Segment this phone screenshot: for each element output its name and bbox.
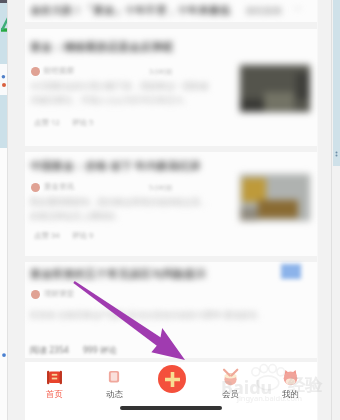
staticText: 5小时前 bbox=[149, 183, 173, 192]
staticText: 财经新闻 bbox=[246, 5, 282, 16]
staticText: 黄金：继续看跌还是会反弹呢 bbox=[30, 40, 173, 54]
staticText: 动态 bbox=[106, 389, 123, 400]
button[interactable]: 首页 bbox=[38, 368, 70, 400]
staticText: 评论 5 bbox=[72, 117, 94, 127]
staticText: 3小时前 bbox=[149, 67, 173, 76]
staticText: 财经观察 bbox=[44, 66, 74, 75]
button[interactable]: 会员 bbox=[214, 368, 246, 400]
staticText: Baidu bbox=[221, 375, 273, 400]
staticText: 中国黄金：价格 创下 年内新高纪录 bbox=[30, 158, 201, 173]
button[interactable]: 黄金：继续看跌还是会反弹呢 bbox=[25, 29, 317, 146]
staticText: 阅读 2354 bbox=[30, 344, 69, 356]
staticText: 关键支撑位，市场人士认为后市仍有压力。 bbox=[30, 95, 192, 106]
staticText: 受多重因素影响，国内黄金零售价格持续走高， bbox=[30, 197, 209, 208]
staticText: 黄金资讯 bbox=[44, 182, 74, 191]
staticText: 评论 9 bbox=[72, 230, 94, 240]
staticText: 首页 bbox=[46, 389, 63, 400]
button[interactable]: Create post bbox=[158, 365, 186, 393]
button[interactable]: 我的 bbox=[274, 368, 306, 400]
staticText: 经验 bbox=[288, 375, 322, 396]
button[interactable]: 黄金投资的五个常见误区与风险提示 bbox=[25, 262, 317, 358]
button[interactable]: 动态 bbox=[98, 368, 130, 400]
staticText: 会员 bbox=[222, 389, 239, 400]
staticText: 点赞 34 bbox=[34, 230, 60, 240]
staticText: 金价大跌！「黄金」十年不变，十年来最低 bbox=[30, 4, 230, 17]
staticText: 999 评论 bbox=[83, 344, 117, 356]
staticText: jingyan.baidu.com bbox=[237, 393, 302, 403]
staticText: 理财课堂 bbox=[44, 289, 74, 298]
staticText: 投资者 在购买黄金产品时 应当注意相关条款与费率 避免踩坑 bbox=[30, 309, 258, 321]
staticText: 多家品牌金店上调报价。 bbox=[30, 211, 124, 222]
staticText: 我的 bbox=[282, 389, 299, 400]
button[interactable]: 中国黄金：价格 创下 年内新高纪录 bbox=[25, 152, 317, 256]
staticText: 黄金投资的五个常见误区与风险提示 bbox=[30, 267, 206, 281]
staticText: 点赞 12 bbox=[34, 117, 60, 127]
staticText: 今日国际金价出现大幅下跌，现货黄金一度跌破 bbox=[30, 81, 209, 92]
